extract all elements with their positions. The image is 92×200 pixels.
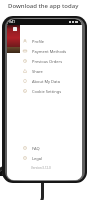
staticText: 10:00 [2,171,11,176]
button[interactable]: Profile [20,36,82,46]
staticText: Download the app today [8,2,79,10]
staticText: Cookie Settings [32,89,62,94]
staticText: Payment Methods [32,49,67,54]
staticText: Share [32,69,43,74]
staticText: Previous Orders [32,59,63,64]
button[interactable]: Payment Methods [20,46,82,56]
staticText: Version 3.12.0 [31,166,51,170]
button[interactable]: About My Data [20,76,82,86]
staticText: Profile [32,39,45,44]
staticText: Legal [32,156,43,161]
button[interactable]: Legal [20,153,82,163]
staticText: 9:41 [9,20,15,24]
staticText: FAQ [32,146,40,151]
button[interactable]: Cookie Settings [20,86,82,96]
button[interactable]: Previous Orders [20,56,82,66]
staticText: About My Data [32,79,60,84]
button[interactable]: FAQ [20,143,82,153]
button[interactable]: Share [20,66,82,76]
